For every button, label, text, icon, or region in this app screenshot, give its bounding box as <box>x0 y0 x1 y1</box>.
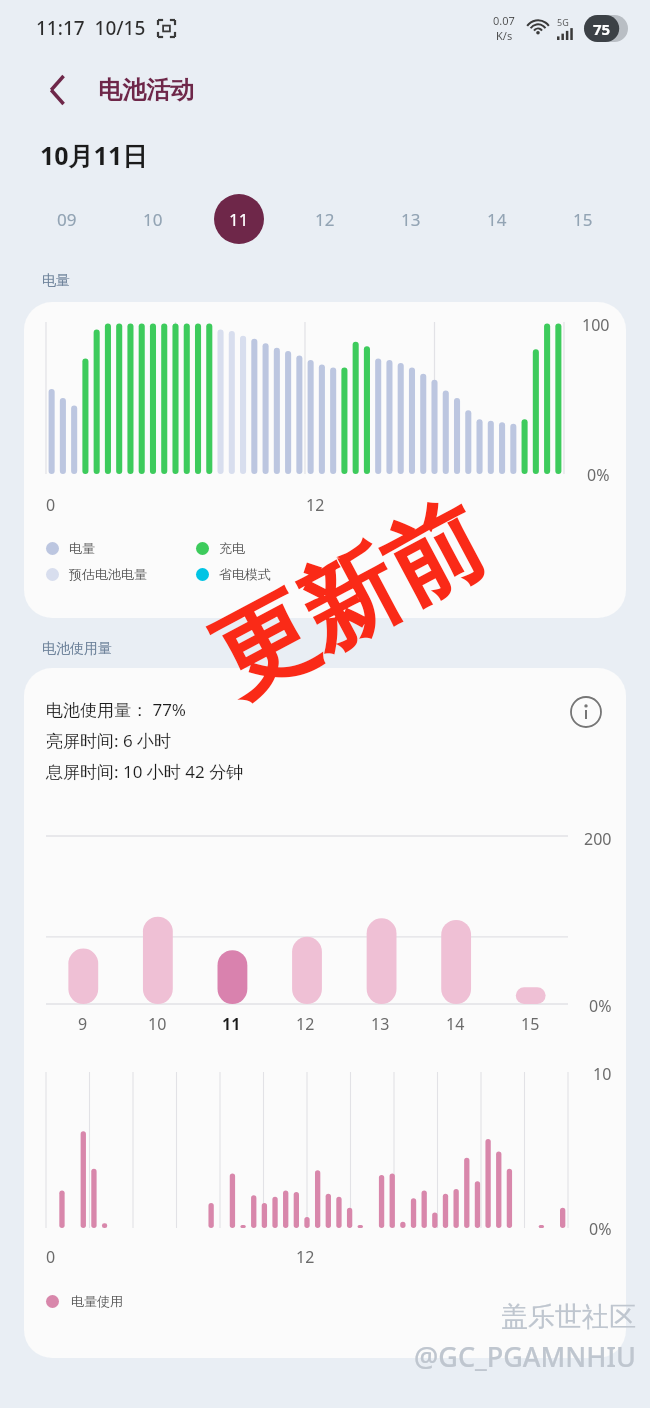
staticText: 15 <box>573 208 593 231</box>
button[interactable]: 09 <box>24 188 110 250</box>
button[interactable]: 返回 <box>36 68 80 112</box>
staticText: 12 <box>296 1013 315 1035</box>
staticText: 15 <box>521 1013 540 1035</box>
staticText: 13 <box>401 208 421 231</box>
staticText: 10月11日 <box>40 138 148 172</box>
button[interactable]: 信息 <box>560 686 612 738</box>
staticText: 11:17 10/15 <box>36 15 146 41</box>
staticText: 电量 <box>69 540 95 556</box>
staticText: 息屏时间: 10 小时 42 分钟 <box>46 760 244 783</box>
staticText: 14 <box>446 1013 465 1035</box>
staticText: 12 <box>315 208 335 231</box>
staticText: @GC_PGAMNHIU <box>414 1338 636 1375</box>
button[interactable]: 电池使用量： 77% <box>24 668 626 1358</box>
staticText: 预估电池电量 <box>69 566 147 582</box>
staticText: 电量 <box>42 272 70 290</box>
staticText: 充电 <box>219 540 245 556</box>
staticText: 100 <box>582 314 610 336</box>
staticText: 75 <box>593 19 611 39</box>
staticText: 盖乐世社区 <box>501 1300 636 1334</box>
staticText: 更新前 <box>193 479 505 721</box>
button[interactable]: 13 <box>368 188 454 250</box>
button[interactable]: 14 <box>454 188 540 250</box>
button[interactable]: 12 <box>282 188 368 250</box>
staticText: 10 <box>593 1063 612 1085</box>
staticText: 0 <box>46 494 56 516</box>
staticText: 0 <box>46 1246 56 1268</box>
button[interactable]: 11 <box>196 188 282 250</box>
staticText: 省电模式 <box>219 566 271 582</box>
staticText: 10 <box>148 1013 167 1035</box>
button[interactable]: 10 <box>110 188 196 250</box>
staticText: 0.07 <box>493 13 515 28</box>
button[interactable]: 100 <box>24 302 626 618</box>
staticText: 0% <box>587 464 610 486</box>
staticText: 12 <box>306 494 325 516</box>
staticText: 09 <box>57 208 77 231</box>
staticText: 9 <box>78 1013 88 1035</box>
staticText: 0% <box>589 995 612 1017</box>
staticText: K/s <box>496 28 513 43</box>
staticText: 5G <box>557 16 569 28</box>
staticText: 11 <box>229 208 249 231</box>
staticText: 0% <box>589 1218 612 1240</box>
staticText: 14 <box>487 208 507 231</box>
staticText: 13 <box>371 1013 390 1035</box>
staticText: 12 <box>296 1246 315 1268</box>
staticText: 200 <box>584 828 612 850</box>
staticText: 10 <box>143 208 163 231</box>
staticText: 11 <box>222 1013 241 1035</box>
button[interactable]: 15 <box>540 188 626 250</box>
staticText: 电池使用量 <box>42 640 112 658</box>
staticText: 电池活动 <box>98 75 194 105</box>
staticText: 亮屏时间: 6 小时 <box>46 729 172 752</box>
staticText: 电量使用 <box>71 1293 123 1309</box>
staticText: 电池使用量： 77% <box>46 698 186 721</box>
